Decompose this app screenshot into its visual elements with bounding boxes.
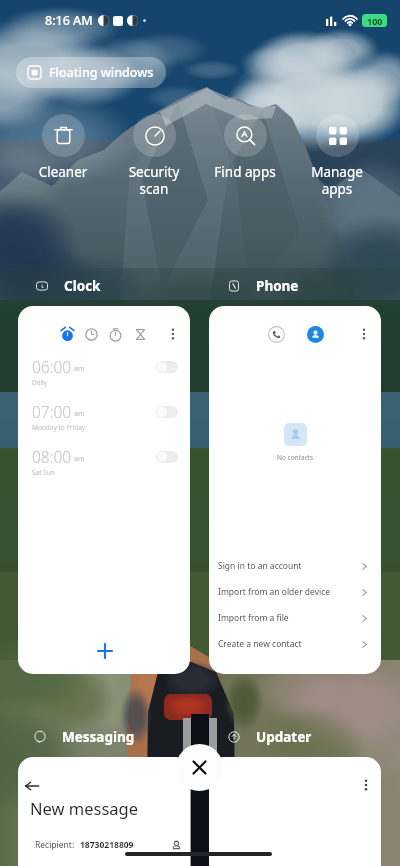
button[interactable]: Import from an older device (218, 579, 369, 605)
staticText: 8:16 AM (45, 12, 93, 29)
button[interactable]: Toggle alarm (156, 406, 178, 418)
staticText: New message (30, 797, 139, 819)
button[interactable]: More options (359, 778, 373, 792)
button[interactable]: Pick contact (171, 840, 182, 851)
button[interactable]: Manage apps (294, 114, 380, 200)
staticText: Import from an older device (218, 586, 331, 598)
staticText: Monday to Friday (32, 423, 86, 432)
staticText: Security scan (111, 163, 197, 198)
button[interactable]: Cleaner (20, 114, 106, 200)
button[interactable]: 07:00 (18, 397, 190, 437)
staticText: Import from a file (218, 612, 289, 624)
button[interactable]: Messaging (34, 728, 135, 746)
button[interactable]: Close all (176, 744, 223, 791)
button[interactable]: Stopwatch (108, 327, 123, 342)
staticText: 07:00 (32, 401, 72, 422)
button[interactable]: Timer (133, 327, 148, 342)
button[interactable]: Updater (228, 728, 312, 746)
staticText: Phone (256, 277, 299, 295)
button[interactable]: 08:00 (18, 442, 190, 482)
button[interactable]: Sign in to an account (218, 553, 369, 579)
staticText: Recipient: (35, 839, 75, 851)
button[interactable]: Toggle alarm (156, 451, 178, 463)
staticText: Create a new contact (218, 638, 302, 650)
staticText: am (74, 409, 85, 419)
staticText: 18730218809 (80, 839, 134, 851)
button[interactable]: Alarm (60, 327, 75, 342)
button[interactable]: 06:00 (18, 352, 190, 392)
button[interactable]: Security scan (111, 114, 197, 200)
button[interactable]: Recents (209, 306, 381, 674)
button[interactable]: Add alarm (92, 638, 118, 664)
button[interactable]: Contacts (307, 326, 324, 343)
staticText: Floating windows (49, 64, 154, 81)
staticText: am (74, 454, 85, 464)
staticText: Clock (64, 277, 101, 295)
button[interactable]: Back (18, 757, 190, 866)
staticText: am (74, 364, 85, 374)
button[interactable]: More options (209, 757, 381, 866)
button[interactable]: Clock (36, 277, 101, 295)
staticText: Messaging (62, 728, 135, 746)
staticText: Sat Sun (32, 468, 55, 477)
button[interactable]: Recents (268, 326, 285, 343)
button[interactable]: Back (24, 778, 40, 794)
staticText: Cleaner (20, 163, 106, 181)
staticText: Manage apps (294, 163, 380, 198)
button[interactable]: More options (357, 327, 371, 341)
staticText: 100 (367, 15, 383, 27)
button[interactable]: More options (166, 327, 180, 341)
button[interactable]: Toggle alarm (156, 361, 178, 373)
button[interactable]: Create a new contact (218, 631, 369, 657)
button[interactable]: Phone (228, 277, 299, 295)
button[interactable]: Import from a file (218, 605, 369, 631)
button[interactable]: Floating windows (16, 57, 166, 88)
staticText: No contacts (277, 453, 314, 462)
staticText: Updater (256, 728, 312, 746)
button[interactable]: Alarm (18, 306, 190, 674)
staticText: Daily (32, 378, 48, 387)
staticText: Find apps (202, 163, 288, 181)
button[interactable]: World clock (84, 327, 99, 342)
button[interactable]: Find apps (202, 114, 288, 200)
staticText: 08:00 (32, 446, 72, 467)
staticText: 06:00 (32, 356, 72, 377)
staticText: Sign in to an account (218, 560, 302, 572)
